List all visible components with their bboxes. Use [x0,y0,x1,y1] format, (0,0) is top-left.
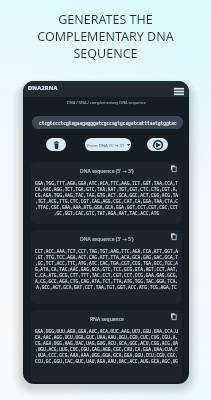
staticText: DNA sequence (5' → 3') [80,168,134,175]
staticText: GENERATES THE [58,11,153,28]
staticText: DNA2RNA [28,84,58,92]
staticText: GGA,TGG,TTT,AGA,GGA,ATC,ACA,TTC,AAG,TCT,… [34,180,179,216]
button[interactable]: ctcgtccctcgtagaagagggatcgccagtgcagatcatt… [32,116,183,129]
staticText: SEQUENCE [73,45,138,62]
button[interactable]: From DNA (5' → 3') [85,138,131,151]
button[interactable]: Run [147,138,168,151]
staticText: ctcgtccctcgtagaagagggatcgccagtgcagatcatt… [39,120,177,126]
staticText: From DNA (5' → 3') [87,142,125,148]
staticText: DNA / RNA / complementary DNA sequence [67,100,146,105]
button[interactable]: Copy [170,313,177,320]
staticText: GGA,UGG,UUU,AGA,GGA,AUC,ACA,UUC,AAG,UCU,… [34,328,179,364]
button[interactable]: Copy [170,233,177,240]
button[interactable]: Clear [46,138,66,151]
staticText: COMPLEMENTARY DNA [37,28,174,45]
staticText: CCT,ACC,AAA,TCT,CCT,TAG,TGT,AAG,TTC,AGA,… [34,248,179,290]
button[interactable]: Menu [172,86,186,97]
staticText: DNA sequence (3' → 5') [80,236,134,243]
button[interactable]: Copy [170,165,177,172]
staticText: RNA sequence [90,316,124,323]
